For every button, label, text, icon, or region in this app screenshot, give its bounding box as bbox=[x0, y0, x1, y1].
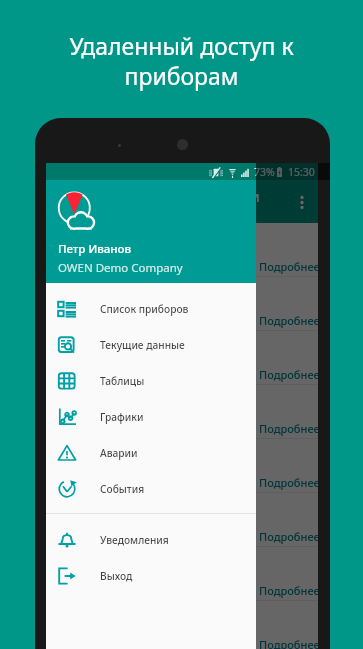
staticText: Текущие данные bbox=[100, 338, 185, 352]
button[interactable]: Выход bbox=[46, 558, 256, 594]
staticText: Подробнее › bbox=[259, 529, 318, 544]
staticText: 15:30 bbox=[288, 165, 315, 179]
staticText: Уведомления bbox=[100, 533, 169, 547]
staticText: Подробнее › bbox=[259, 367, 318, 382]
button[interactable]: Подробнее › bbox=[46, 547, 318, 600]
staticText: 73% bbox=[254, 165, 275, 179]
staticText: Подробнее › bbox=[259, 475, 318, 490]
staticText: Аварии bbox=[100, 446, 138, 460]
button[interactable]: Подробнее › bbox=[46, 277, 318, 330]
staticText: Петр Иванов bbox=[58, 241, 132, 257]
button[interactable]: Таблицы bbox=[46, 363, 256, 399]
button[interactable]: Подробнее › bbox=[46, 439, 318, 492]
button[interactable]: События bbox=[46, 471, 256, 507]
button[interactable]: Подробнее › bbox=[46, 601, 318, 649]
staticText: OWEN Demo Company bbox=[58, 260, 183, 276]
button[interactable]: Open navigation drawer bbox=[60, 191, 82, 213]
staticText: Список приборов bbox=[100, 302, 189, 316]
staticText: Графики bbox=[100, 410, 144, 424]
button[interactable]: Подробнее › bbox=[46, 331, 318, 384]
staticText: Подробнее › bbox=[259, 313, 318, 328]
button[interactable]: Аварии bbox=[46, 435, 256, 471]
staticText: Подробнее › bbox=[259, 421, 318, 436]
button[interactable]: Подробнее › bbox=[46, 385, 318, 438]
button[interactable]: More options bbox=[289, 189, 315, 215]
staticText: Таблицы bbox=[100, 374, 145, 388]
button[interactable]: Подробнее › bbox=[46, 223, 318, 276]
staticText: Список всех приборов и bbox=[98, 188, 260, 206]
staticText: Удаленный доступ к приборам bbox=[48, 30, 315, 91]
button[interactable]: Список приборов bbox=[46, 291, 256, 327]
button[interactable]: Графики bbox=[46, 399, 256, 435]
staticText: Подробнее › bbox=[259, 637, 318, 649]
staticText: Выход bbox=[100, 569, 133, 583]
staticText: Подробнее › bbox=[259, 583, 318, 598]
button[interactable]: Текущие данные bbox=[46, 327, 256, 363]
staticText: События bbox=[100, 482, 145, 496]
button[interactable]: Уведомления bbox=[46, 522, 256, 558]
button[interactable]: Подробнее › bbox=[46, 493, 318, 546]
staticText: Подробнее › bbox=[259, 259, 318, 274]
